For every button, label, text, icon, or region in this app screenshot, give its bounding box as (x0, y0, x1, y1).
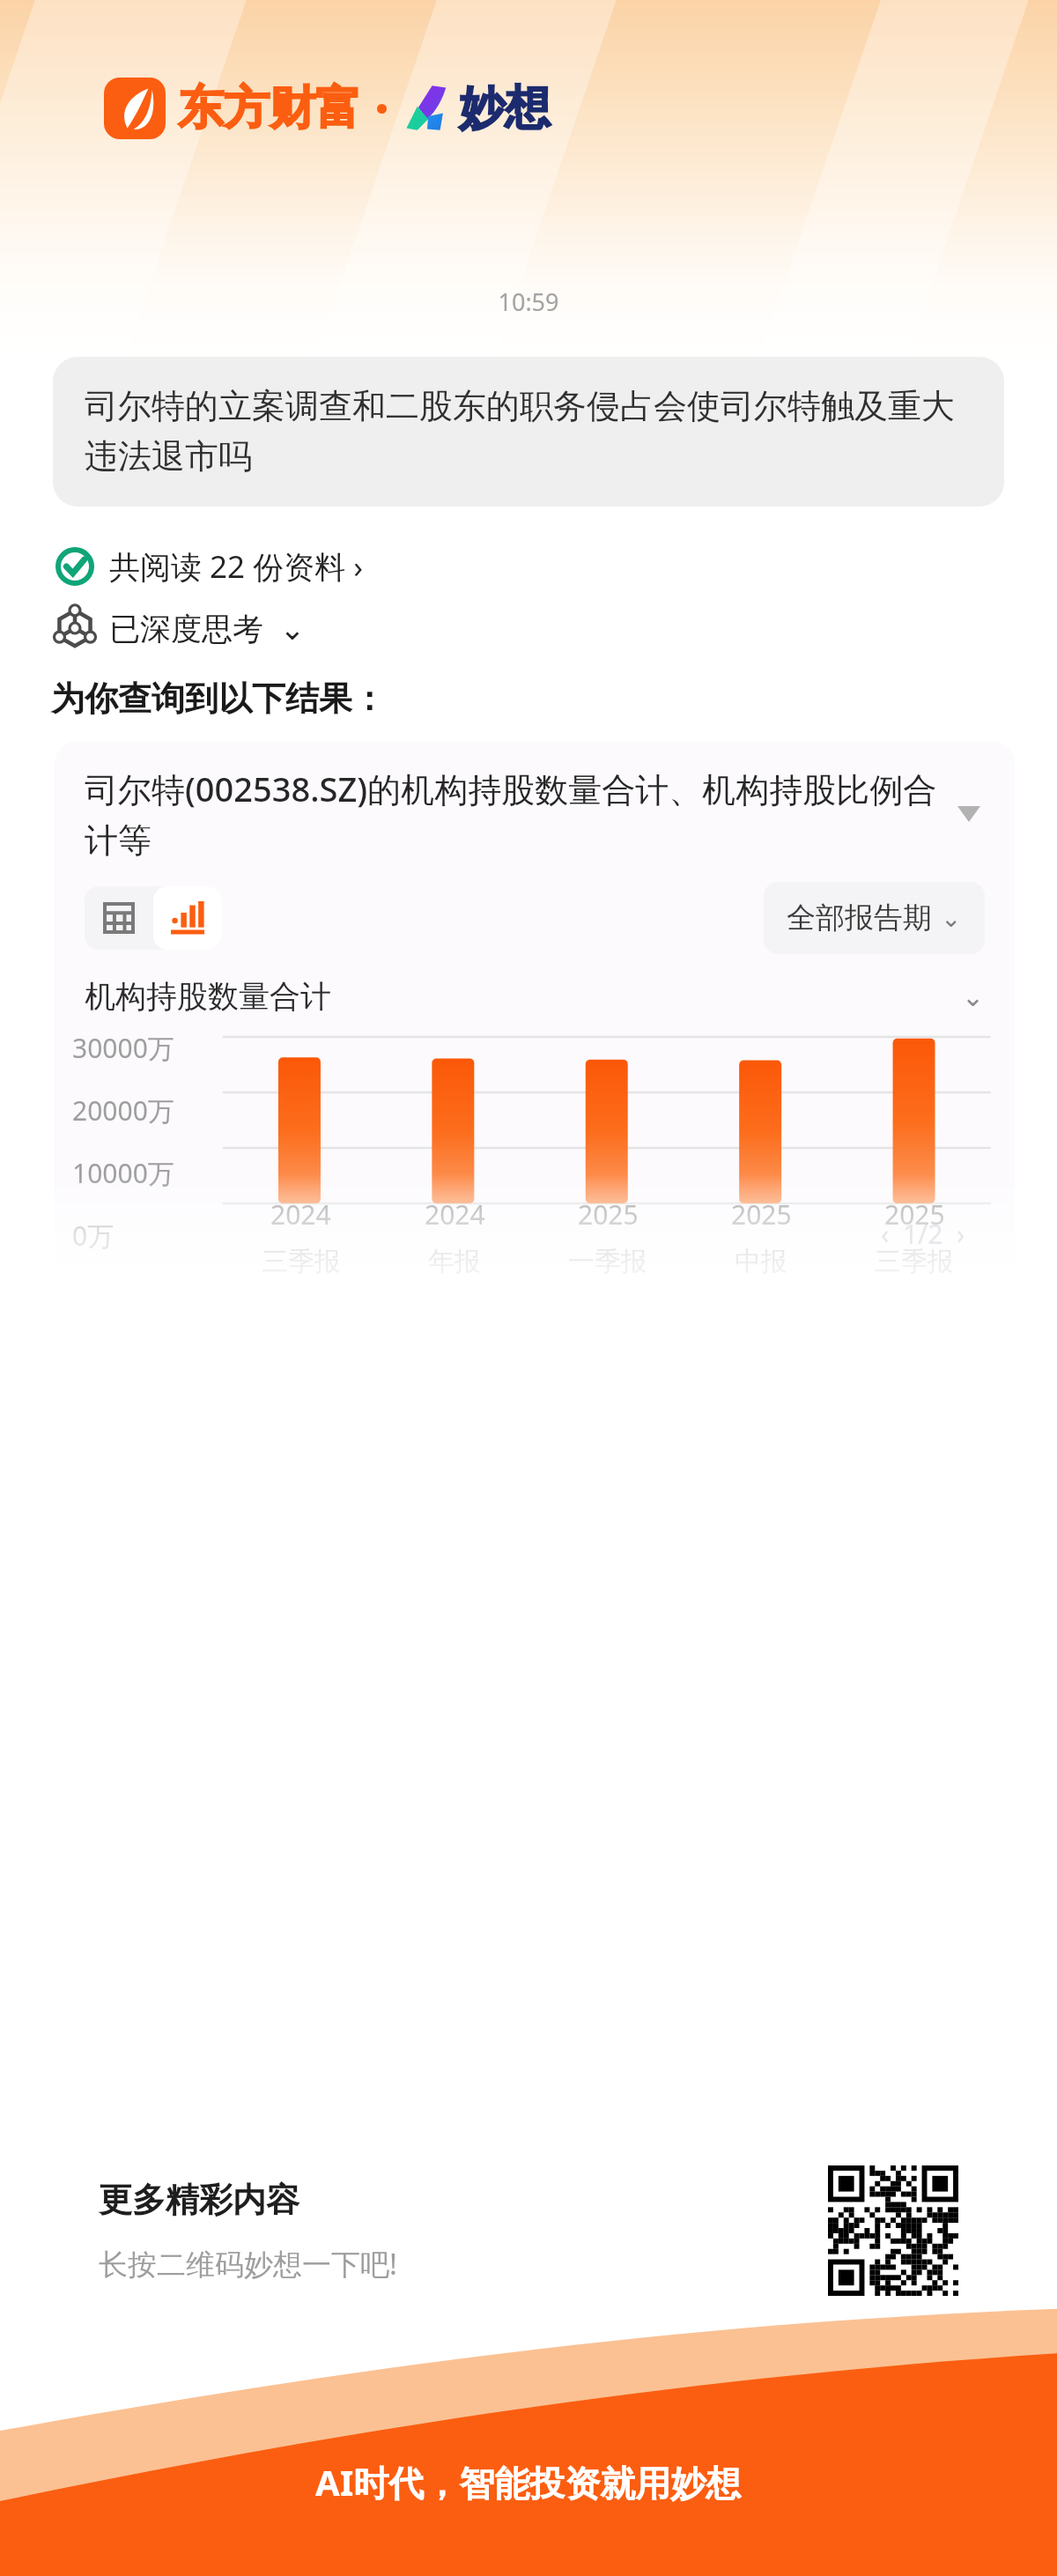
staticText: 机构持股数量合计 (85, 977, 962, 1016)
button[interactable]: 图表视图 (153, 886, 222, 950)
staticText: 20000万 (72, 1092, 174, 1129)
staticText: 长按二维码妙想一下吧! (99, 2244, 397, 2284)
button[interactable]: 表格视图 (85, 886, 153, 950)
button[interactable]: 已深度思考 ⌄ (55, 607, 306, 649)
staticText: ⌄ (941, 904, 962, 933)
staticText: 已深度思考 ⌄ (109, 607, 306, 649)
staticText: 司尔特的立案调查和二股东的职务侵占会使司尔特触及重大违法退市吗 (85, 385, 972, 478)
staticText: AI时代，智能投资就用妙想 (315, 2458, 742, 2506)
staticText: 东方财富 (178, 79, 361, 137)
staticText: 2025 (578, 1196, 639, 1232)
staticText: 三季报 (875, 1245, 954, 1278)
staticText: 为你查询到以下结果： (51, 677, 386, 720)
button[interactable]: 展开 (953, 798, 985, 830)
staticText: ⌄ (962, 981, 985, 1012)
button[interactable]: 共阅读 22 份资料 › (55, 545, 364, 588)
staticText: 共阅读 22 份资料 › (109, 545, 364, 588)
staticText: 年报 (428, 1245, 481, 1278)
staticText: 三季报 (262, 1245, 341, 1278)
staticText: 2025 (884, 1196, 945, 1232)
staticText: 2025 (731, 1196, 792, 1232)
button[interactable]: 司尔特的立案调查和二股东的职务侵占会使司尔特触及重大违法退市吗 (53, 357, 1004, 507)
staticText: 2024 (270, 1196, 331, 1232)
staticText: 司尔特(002538.SZ)的机构持股数量合计、机构持股比例合计等 (85, 766, 942, 862)
staticText: ‹ 1/2 › (881, 1216, 965, 1252)
staticText: 10:59 (0, 285, 1057, 318)
staticText: 10000万 (72, 1155, 174, 1191)
staticText: 30000万 (72, 1030, 174, 1066)
staticText: 0万 (72, 1218, 115, 1254)
staticText: 更多精彩内容 (99, 2179, 299, 2221)
staticText: 中报 (735, 1245, 787, 1278)
staticText: 2024 (425, 1196, 485, 1232)
staticText: 一季报 (568, 1245, 647, 1278)
staticText: 妙想 (459, 79, 551, 137)
staticText: 全部报告期 (787, 899, 932, 936)
button[interactable]: 机构持股数量合计 (85, 977, 985, 1016)
button[interactable]: 全部报告期 (764, 882, 985, 954)
